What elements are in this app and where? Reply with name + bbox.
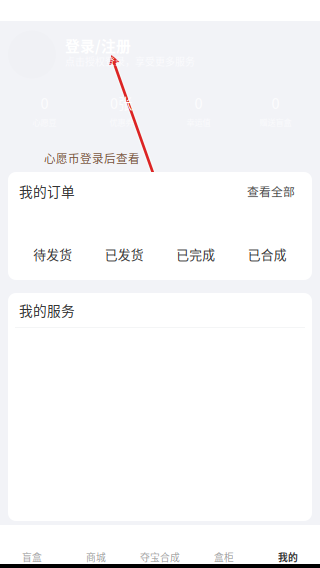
- staticText: 已发货: [105, 245, 144, 263]
- button[interactable]: 盲盒: [0, 525, 64, 568]
- button[interactable]: 心愿币登录后查看: [0, 136, 320, 172]
- staticText: 夺宝合成: [140, 550, 180, 564]
- staticText: 查看全部: [247, 182, 295, 200]
- staticText: 商城: [86, 550, 106, 564]
- button[interactable]: 已发货: [88, 228, 160, 280]
- staticText: 登录/注册: [65, 35, 131, 56]
- button[interactable]: 登录/注册: [0, 21, 320, 88]
- button[interactable]: 0张: [83, 88, 160, 136]
- staticText: 待发货: [33, 245, 72, 263]
- staticText: 0张: [110, 92, 133, 113]
- staticText: 盒柜: [214, 550, 234, 564]
- staticText: 已合成: [248, 245, 287, 263]
- button[interactable]: 盒柜: [192, 525, 256, 568]
- button[interactable]: 已完成: [160, 228, 231, 280]
- button[interactable]: 夺宝合成: [128, 525, 192, 568]
- staticText: 优惠券: [109, 116, 133, 128]
- button[interactable]: 已合成: [231, 228, 303, 280]
- staticText: 点击授权登录，享受更多服务: [65, 54, 195, 68]
- button[interactable]: 查看全部: [247, 182, 295, 200]
- staticText: 0: [194, 92, 202, 113]
- staticText: 我的服务: [19, 300, 75, 320]
- button[interactable]: 商城: [64, 525, 128, 568]
- staticText: 盲盒: [22, 550, 42, 564]
- staticText: 已完成: [176, 245, 215, 263]
- staticText: 0: [40, 92, 48, 113]
- button[interactable]: 待发货: [17, 228, 88, 280]
- staticText: 我的: [278, 550, 298, 564]
- staticText: 心愿币登录后查看: [44, 150, 140, 166]
- button[interactable]: 我的: [256, 525, 320, 568]
- staticText: 我的订单: [19, 181, 75, 201]
- staticText: 0: [271, 92, 279, 113]
